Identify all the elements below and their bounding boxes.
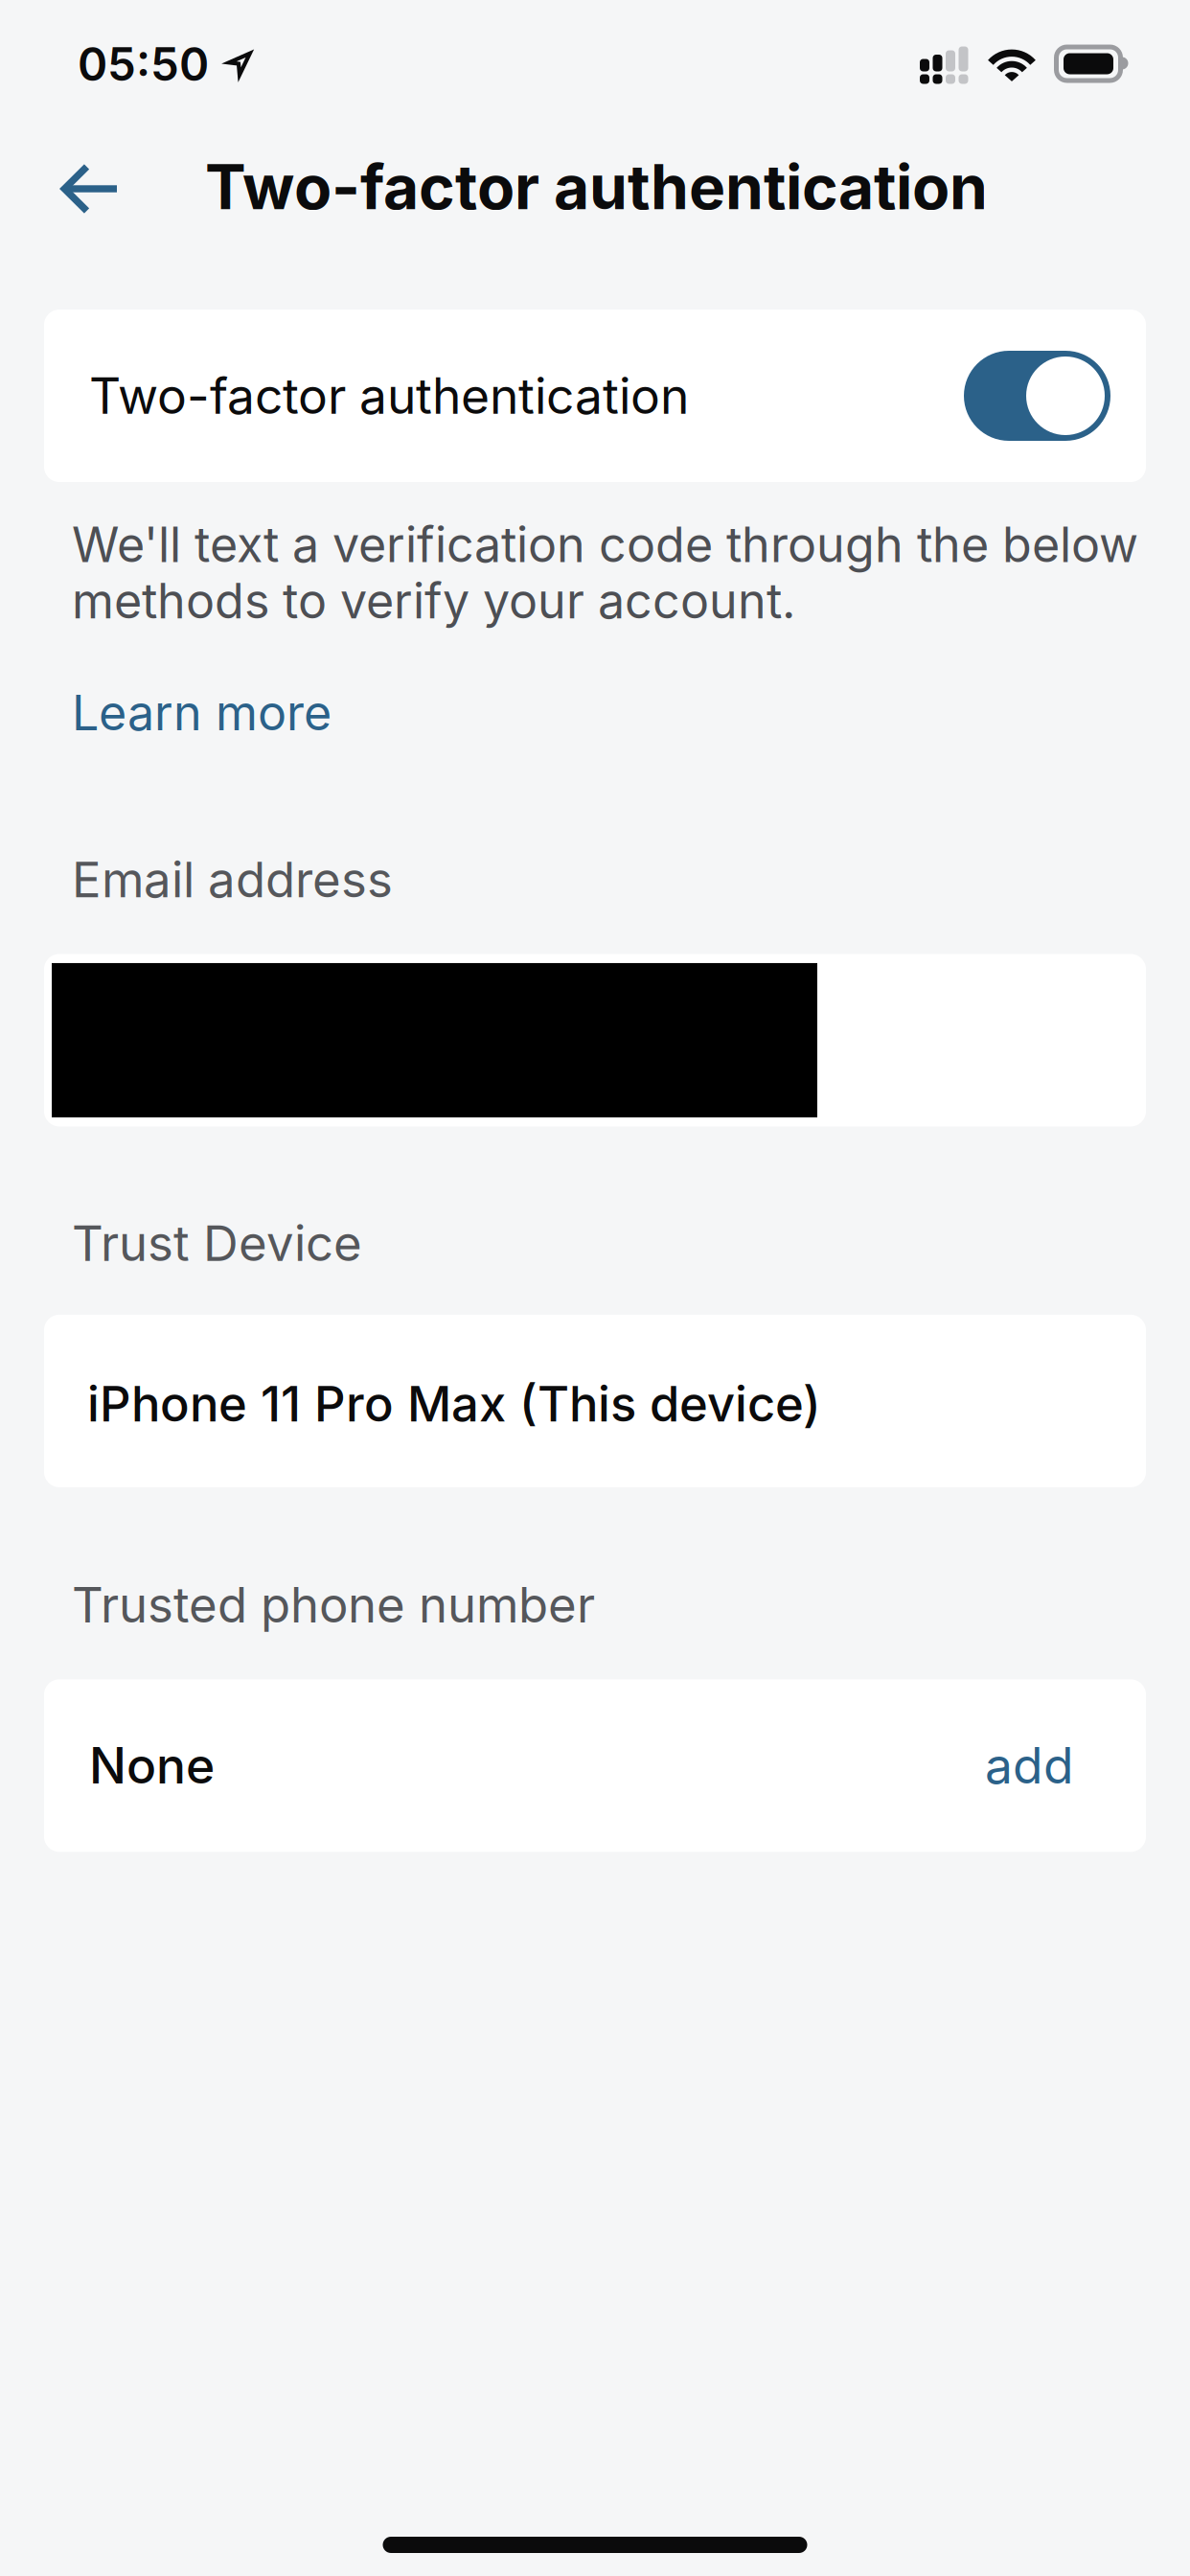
staticText: add bbox=[985, 1736, 1074, 1795]
button[interactable]: add bbox=[960, 1718, 1099, 1813]
staticText: None bbox=[89, 1736, 215, 1795]
staticText: Two-factor authentication bbox=[205, 150, 988, 224]
staticText: 05:50 bbox=[78, 37, 209, 92]
button[interactable]: Two-factor authentication bbox=[964, 351, 1110, 441]
button[interactable]: iPhone 11 Pro Max (This device) bbox=[44, 1315, 1146, 1487]
staticText: Trust Device bbox=[72, 1214, 362, 1273]
staticText: Email address bbox=[72, 850, 393, 909]
staticText: Trusted phone number bbox=[72, 1575, 595, 1634]
staticText: We'll text a verification code through t… bbox=[72, 516, 1138, 630]
staticText: iPhone 11 Pro Max (This device) bbox=[87, 1375, 821, 1433]
button[interactable]: Two-factor authentication bbox=[44, 310, 1146, 482]
button[interactable]: Learn more bbox=[44, 630, 345, 755]
staticText: Two-factor authentication bbox=[89, 366, 689, 426]
button[interactable]: Back bbox=[28, 125, 147, 249]
staticText: Learn more bbox=[72, 684, 332, 742]
